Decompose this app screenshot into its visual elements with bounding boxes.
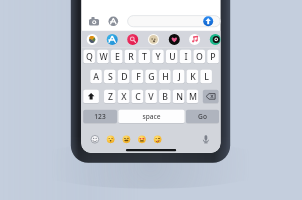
button[interactable]: D: [118, 70, 130, 83]
staticText: O: [196, 51, 203, 63]
button[interactable]: Z: [104, 90, 116, 103]
button[interactable]: Memoji: [148, 34, 159, 45]
staticText: F: [136, 71, 141, 83]
button[interactable]: Photos: [87, 34, 98, 45]
button[interactable]: Backspace: [203, 90, 219, 103]
staticText: L: [204, 71, 209, 83]
button[interactable]: R: [125, 50, 137, 63]
staticText: J: [178, 71, 181, 83]
button[interactable]: M: [187, 90, 199, 103]
button[interactable]: App Store: [107, 14, 121, 28]
button[interactable]: K: [187, 70, 199, 83]
button[interactable]: G: [145, 70, 157, 83]
button[interactable]: Shift: [83, 90, 99, 103]
button[interactable]: T: [138, 50, 150, 63]
staticText: N: [176, 91, 183, 103]
staticText: 123: [94, 112, 106, 121]
staticText: U: [169, 51, 176, 63]
staticText: Y: [155, 51, 161, 63]
button[interactable]: 123: [83, 110, 117, 123]
button[interactable]: Dictate: [202, 135, 210, 144]
button[interactable]: More: [210, 34, 221, 45]
button[interactable]: O: [193, 50, 205, 63]
button[interactable]: Emoji 5: [154, 135, 162, 143]
button[interactable]: N: [173, 90, 185, 103]
staticText: B: [162, 91, 168, 103]
button[interactable]: H: [159, 70, 171, 83]
button[interactable]: Emoji 1: [91, 135, 99, 143]
staticText: H: [162, 71, 169, 83]
button[interactable]: B: [159, 90, 171, 103]
button[interactable]: P: [207, 50, 219, 63]
staticText: W: [99, 51, 108, 63]
staticText: V: [148, 91, 154, 103]
button[interactable]: U: [166, 50, 178, 63]
button[interactable]: Emoji 3: [123, 135, 131, 143]
staticText: X: [121, 91, 127, 103]
button[interactable]: Camera: [87, 14, 101, 28]
button[interactable]: Emoji 2: [107, 135, 115, 143]
button[interactable]: A: [90, 70, 102, 83]
staticText: E: [115, 51, 120, 63]
staticText: Q: [86, 51, 93, 63]
button[interactable]: Digital Touch: [169, 34, 180, 45]
staticText: G: [148, 71, 155, 83]
staticText: P: [210, 51, 216, 63]
button[interactable]: J: [173, 70, 185, 83]
button[interactable]: L: [200, 70, 212, 83]
staticText: D: [121, 71, 128, 83]
button[interactable]: X: [118, 90, 130, 103]
button[interactable]: Y: [152, 50, 164, 63]
staticText: Go: [198, 112, 207, 121]
button[interactable]: [128, 15, 221, 27]
button[interactable]: Images: [127, 34, 138, 45]
button[interactable]: Go: [186, 110, 219, 123]
button[interactable]: Send: [203, 16, 213, 26]
staticText: T: [142, 51, 147, 63]
staticText: S: [108, 71, 113, 83]
button[interactable]: W: [97, 50, 109, 63]
button[interactable]: App Store: [107, 34, 118, 45]
staticText: space: [142, 112, 161, 121]
button[interactable]: E: [111, 50, 123, 63]
button[interactable]: I: [180, 50, 192, 63]
staticText: I: [184, 51, 188, 63]
staticText: A: [93, 71, 99, 83]
button[interactable]: C: [132, 90, 144, 103]
button[interactable]: F: [132, 70, 144, 83]
button[interactable]: Emoji 4: [138, 135, 146, 143]
button[interactable]: Music: [189, 34, 200, 45]
button[interactable]: S: [104, 70, 116, 83]
button[interactable]: V: [145, 90, 157, 103]
staticText: K: [190, 71, 196, 83]
staticText: R: [128, 51, 134, 63]
staticText: Z: [108, 91, 113, 103]
staticText: C: [135, 91, 141, 103]
button[interactable]: Q: [83, 50, 95, 63]
staticText: M: [189, 91, 197, 103]
button[interactable]: space: [118, 110, 184, 123]
